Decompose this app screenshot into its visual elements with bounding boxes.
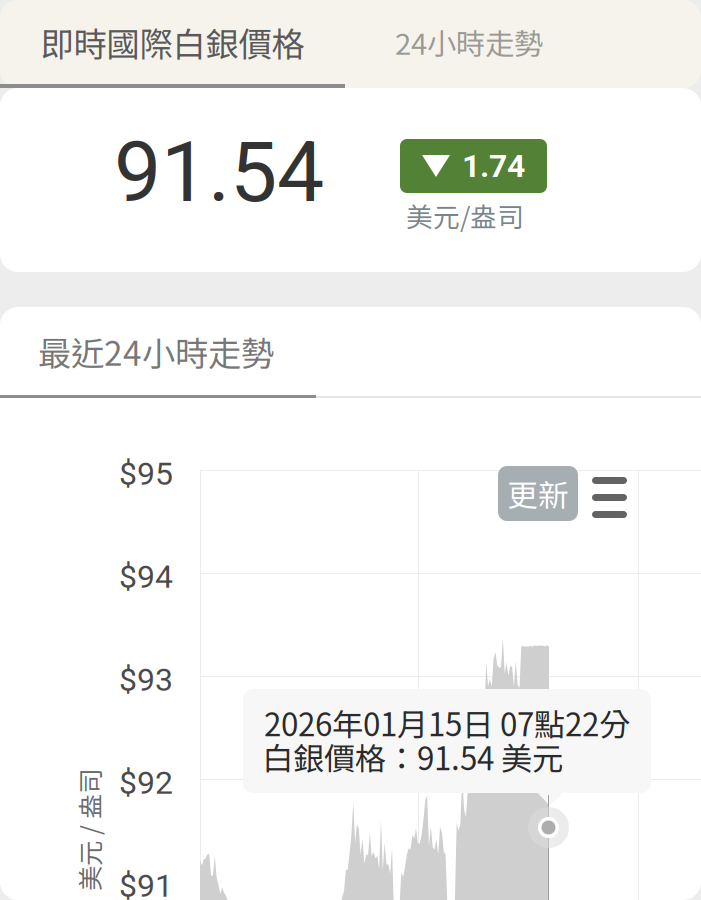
staticText: 白銀價格：91.54 美元 (262, 734, 563, 779)
button[interactable]: 更新 (498, 466, 578, 521)
staticText: $91 (119, 867, 173, 900)
staticText: 即時國際白銀價格 (40, 18, 304, 66)
staticText: 24小時走勢 (395, 21, 543, 63)
staticText: 美元 / 盎司 (28, 812, 150, 848)
staticText: 2026年01月15日 07點22分 (264, 700, 630, 745)
staticText: 91.54 (114, 123, 324, 221)
button[interactable]: 即時國際白銀價格 (0, 0, 345, 88)
staticText: $92 (119, 764, 173, 801)
button[interactable]: Chart menu (592, 477, 627, 518)
staticText: $95 (119, 455, 173, 492)
staticText: $94 (119, 558, 173, 595)
staticText: 更新 (507, 471, 569, 516)
staticText: 最近24小時走勢 (38, 327, 274, 375)
staticText: 1.74 (462, 147, 525, 185)
staticText: 美元/盎司 (406, 196, 524, 235)
staticText: $93 (119, 661, 173, 698)
button[interactable]: 24小時走勢 (345, 0, 701, 84)
